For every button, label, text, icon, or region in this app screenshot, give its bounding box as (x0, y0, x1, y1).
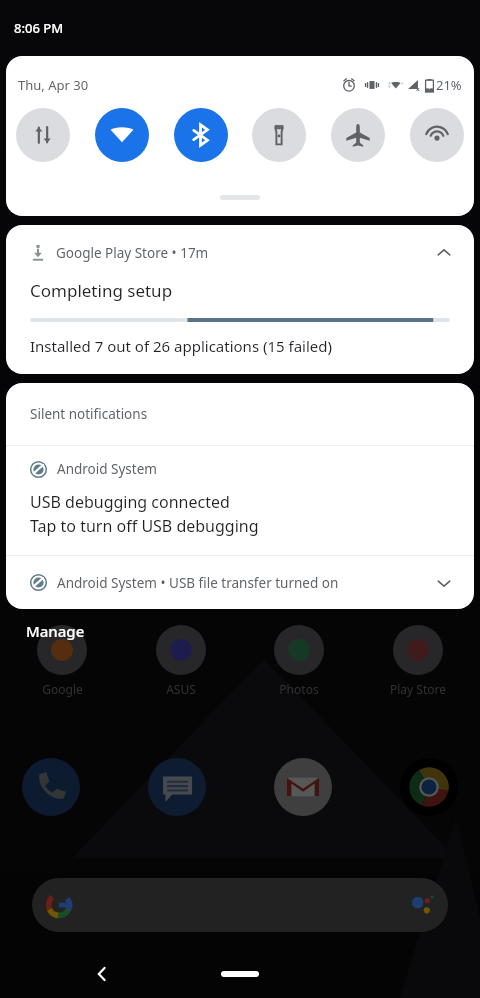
staticText: 8:06 PM (14, 19, 64, 37)
staticText: Android System • USB file transfer turne… (57, 574, 339, 592)
staticText: Google (42, 681, 83, 697)
button[interactable]: Photos (253, 625, 345, 697)
button[interactable]: Play Store (372, 625, 464, 697)
button[interactable] (274, 758, 332, 816)
button[interactable]: Flashlight (252, 108, 306, 162)
button[interactable]: Back (82, 954, 122, 994)
button[interactable]: Expand (430, 569, 458, 597)
button[interactable]: Wi-Fi (95, 108, 149, 162)
button[interactable]: Manage (26, 621, 85, 641)
staticText: Google Play Store • 17m (56, 244, 209, 262)
button[interactable]: Search (32, 878, 448, 932)
button[interactable]: Home (208, 954, 272, 994)
button[interactable]: Thu, Apr 30 (18, 76, 89, 94)
button[interactable]: Android System • USB file transfer turne… (6, 556, 474, 609)
staticText: 21% (436, 76, 462, 94)
button[interactable]: Silent notifications (6, 383, 474, 445)
button[interactable]: Bluetooth (174, 108, 228, 162)
button[interactable]: Collapse (430, 239, 458, 267)
button[interactable] (220, 195, 260, 200)
button[interactable]: ASUS (135, 625, 227, 697)
button[interactable]: Android System (6, 446, 474, 555)
button[interactable] (22, 758, 80, 816)
button[interactable] (400, 758, 458, 816)
button[interactable]: Mobile data (16, 108, 70, 162)
staticText: USB debugging connected (30, 491, 230, 513)
button[interactable] (148, 758, 206, 816)
staticText: Silent notifications (30, 405, 148, 423)
staticText: Tap to turn off USB debugging (30, 515, 259, 537)
staticText: Play Store (390, 681, 446, 697)
staticText: Photos (279, 681, 319, 697)
staticText: Android System (57, 460, 157, 478)
button[interactable]: Airplane mode (331, 108, 385, 162)
staticText: ASUS (166, 681, 196, 697)
button[interactable]: Hotspot (410, 108, 464, 162)
staticText: Installed 7 out of 26 applications (15 f… (30, 336, 333, 356)
button[interactable]: Google Play Store • 17m (6, 225, 474, 374)
staticText: Completing setup (30, 279, 173, 302)
button[interactable]: Google (16, 625, 108, 697)
